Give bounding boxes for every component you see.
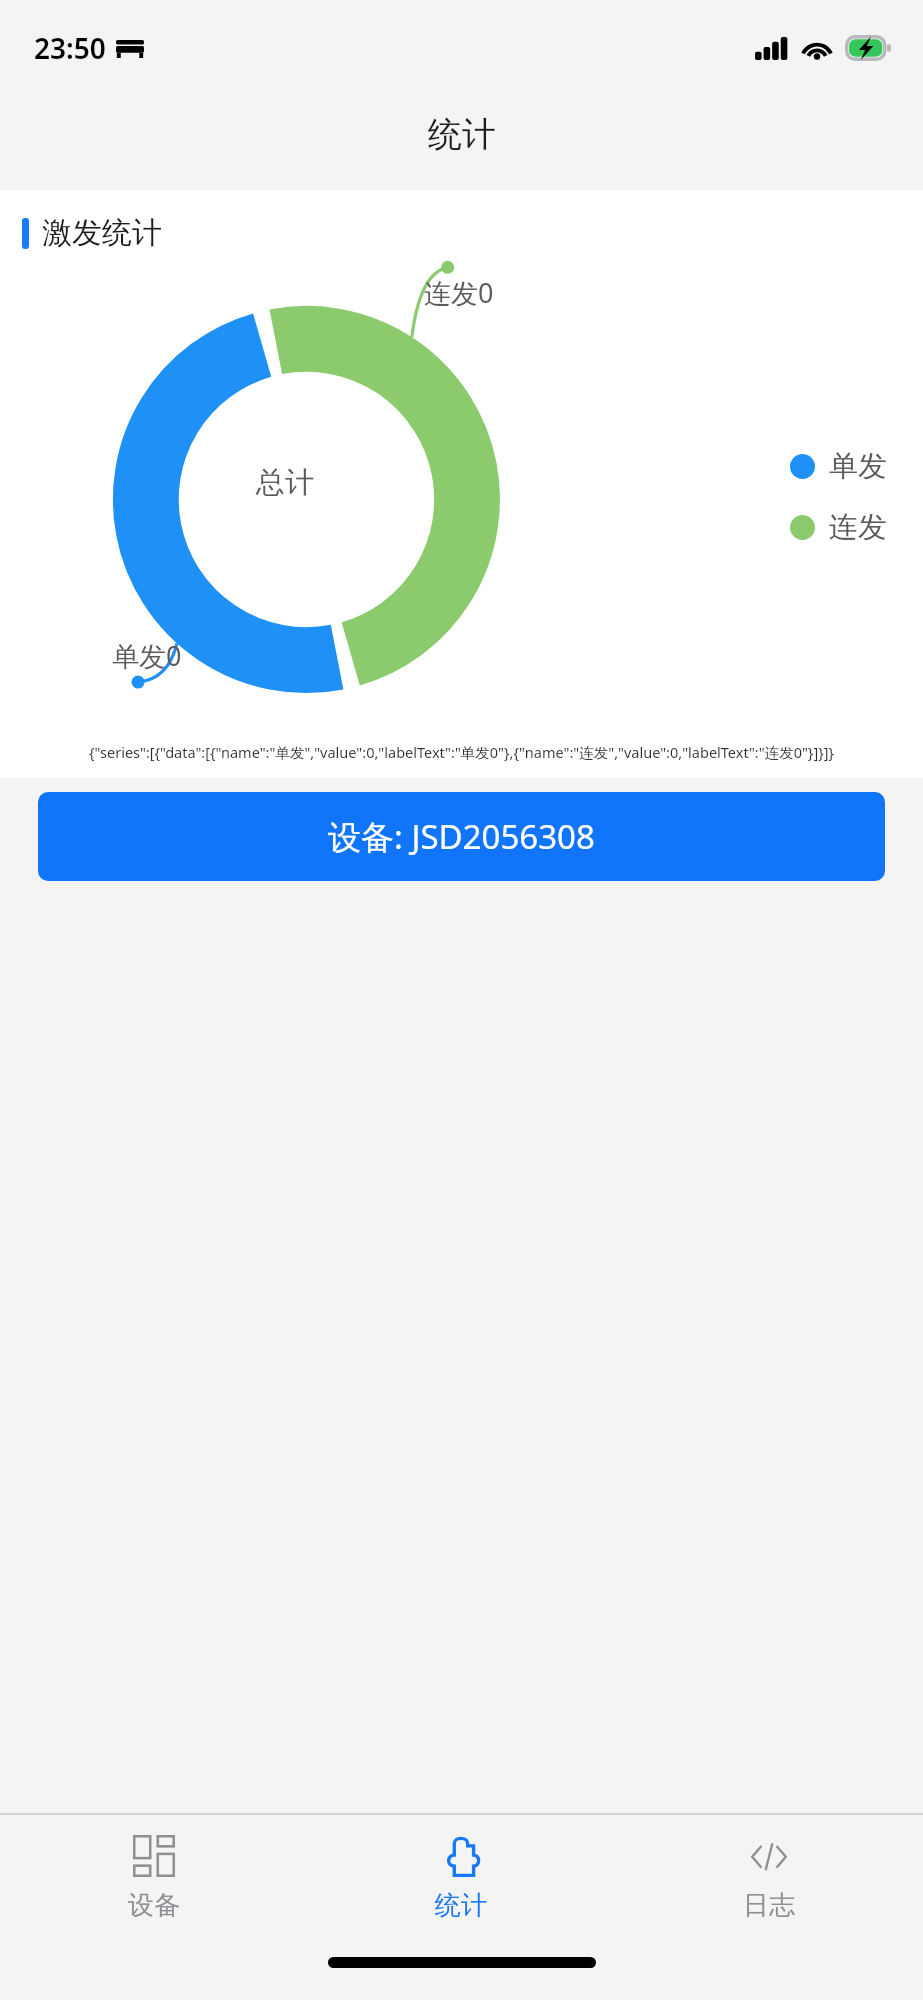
staticText: 连发0 (424, 274, 494, 311)
staticText: 总计 (256, 464, 314, 501)
other: 设备 (133, 1835, 175, 1877)
staticText: 单发 (829, 448, 887, 485)
staticText: 设备 (128, 1889, 180, 1922)
staticText: {"series":[{"data":[{"name":"单发","value"… (0, 742, 923, 762)
staticText: 统计 (428, 113, 496, 156)
staticText: 单发0 (112, 637, 182, 674)
staticText: 连发 (829, 509, 887, 546)
button[interactable]: 日志 (615, 1815, 923, 1940)
staticText: 日志 (743, 1889, 795, 1922)
staticText: 23:50 (34, 29, 106, 67)
other: 日志 (748, 1835, 790, 1877)
button[interactable]: 设备 (0, 1815, 307, 1940)
staticText: 统计 (435, 1889, 487, 1922)
button[interactable]: 设备: JSD2056308 (38, 792, 885, 881)
staticText: 激发统计 (42, 214, 162, 252)
other: 统计 (440, 1835, 482, 1877)
button[interactable]: 统计 (307, 1815, 615, 1940)
staticText: 设备: JSD2056308 (328, 814, 595, 859)
